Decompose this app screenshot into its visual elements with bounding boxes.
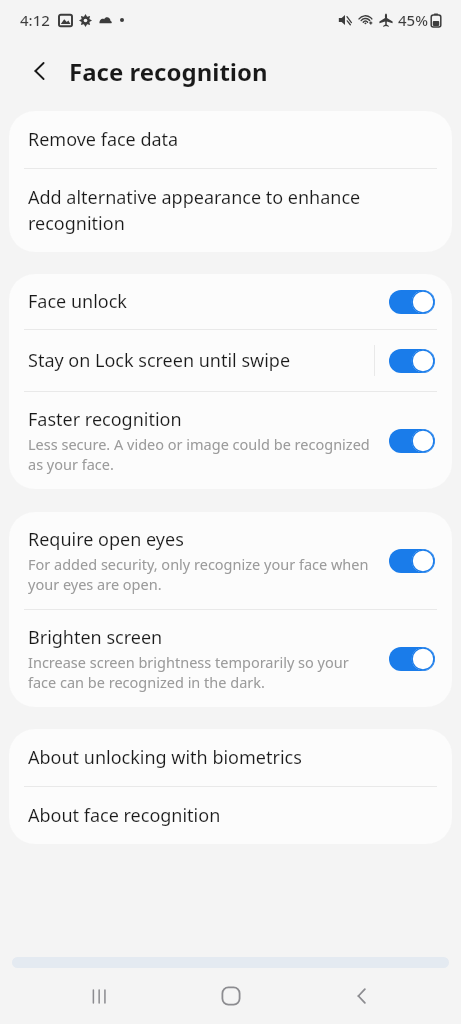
staticText: Add alternative appearance to enhance re…	[28, 185, 430, 236]
button[interactable]: Stay on Lock screen until swipe	[9, 330, 452, 391]
button[interactable]: Toggle on	[389, 647, 435, 671]
staticText: 4:12	[20, 10, 50, 30]
staticText: About face recognition	[28, 803, 221, 828]
staticText: Stay on Lock screen until swipe	[28, 348, 291, 373]
button[interactable]: Require open eyes	[9, 512, 452, 609]
button[interactable]: About face recognition	[9, 787, 452, 844]
button[interactable]: Faster recognition	[9, 392, 452, 489]
button[interactable]: Toggle on	[389, 429, 435, 453]
staticText: 45%	[398, 10, 428, 30]
staticText: Require open eyes	[28, 527, 184, 552]
button[interactable]: Remove face data	[9, 111, 452, 168]
staticText: Face recognition	[69, 55, 268, 88]
button[interactable]: Brighten screen	[9, 610, 452, 707]
button[interactable]: Home	[199, 968, 263, 1024]
staticText: Brighten screen	[28, 625, 163, 650]
button[interactable]: Toggle on	[389, 349, 435, 373]
staticText: About unlocking with biometrics	[28, 745, 302, 770]
staticText: Less secure. A video or image could be r…	[28, 434, 374, 474]
button[interactable]: Toggle on	[389, 549, 435, 573]
button[interactable]: Add alternative appearance to enhance re…	[9, 169, 452, 252]
button[interactable]: About unlocking with biometrics	[9, 729, 452, 786]
button[interactable]: Face unlock	[9, 274, 452, 329]
staticText: For added security, only recognize your …	[28, 554, 374, 594]
staticText: Increase screen brightness temporarily s…	[28, 652, 374, 692]
button[interactable]: Toggle on	[389, 290, 435, 314]
staticText: Face unlock	[28, 289, 127, 314]
staticText: Faster recognition	[28, 407, 182, 432]
staticText: Remove face data	[28, 127, 179, 152]
button[interactable]: Back	[22, 53, 58, 89]
button[interactable]: Back	[330, 968, 394, 1024]
button[interactable]: Recent apps	[67, 968, 131, 1024]
